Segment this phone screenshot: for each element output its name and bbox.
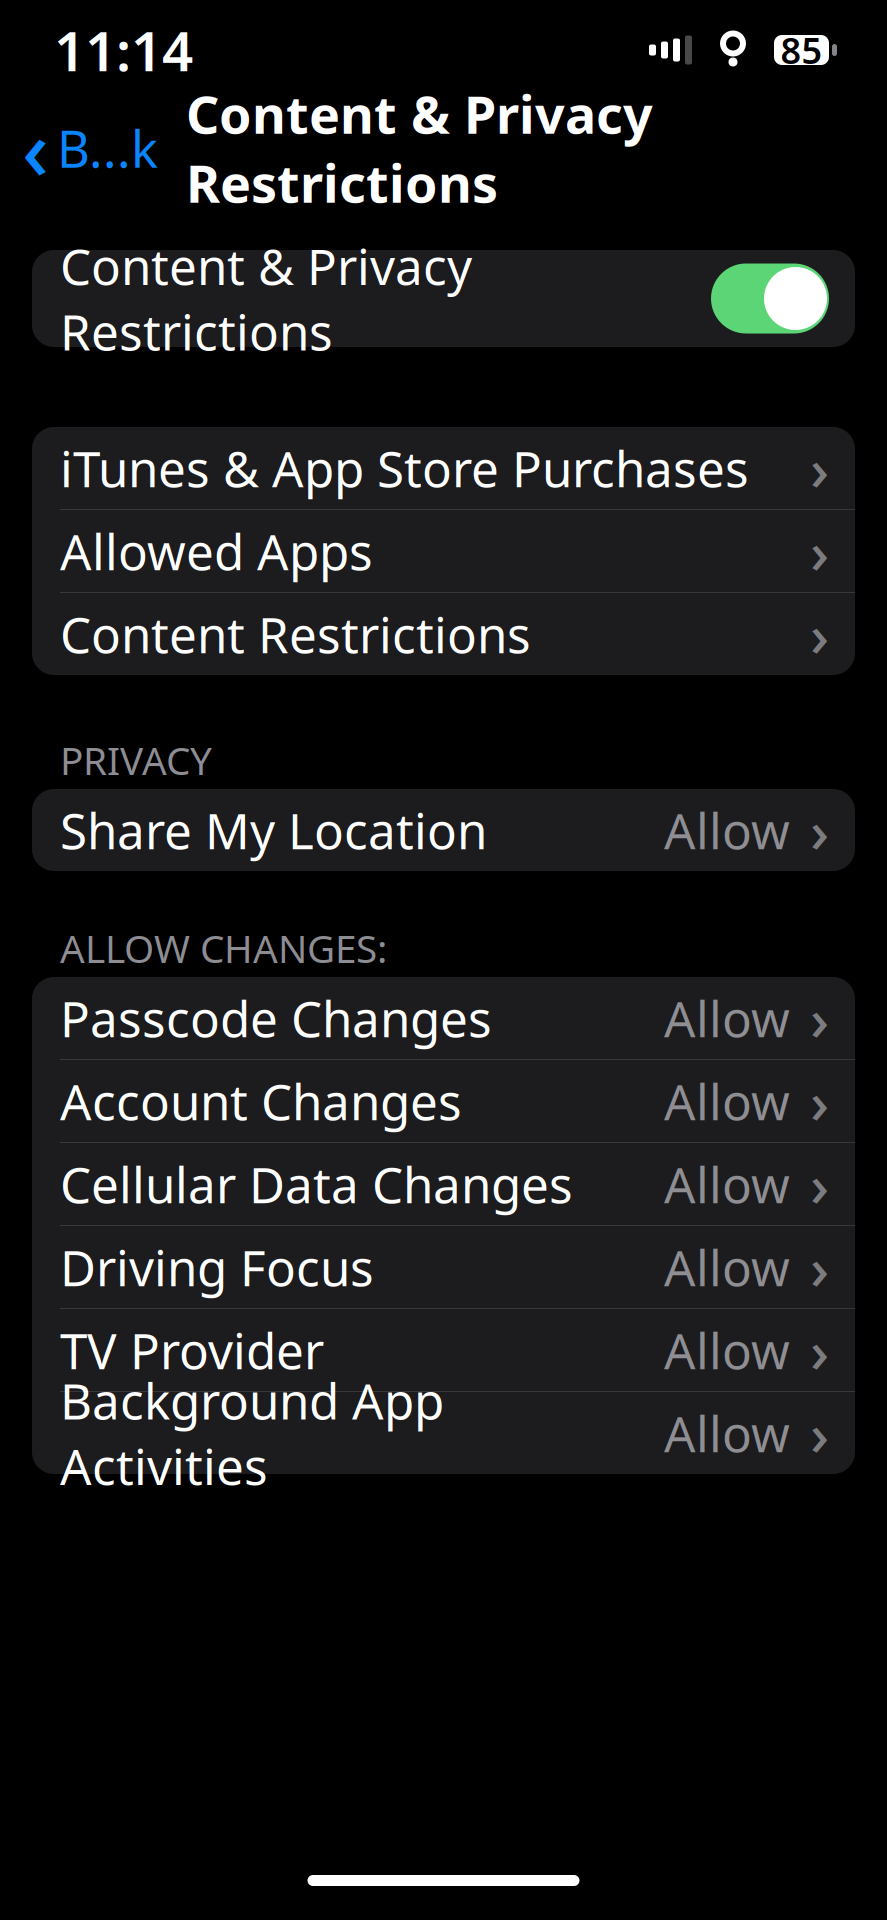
staticText: Account Changes: [60, 1068, 462, 1134]
staticText: Allow: [664, 1234, 790, 1300]
button[interactable]: Background App Activities: [32, 1392, 855, 1474]
button[interactable]: ‹: [0, 83, 166, 213]
staticText: ALLOW CHANGES:: [60, 922, 387, 974]
staticText: iTunes & App Store Purchases: [60, 435, 749, 501]
staticText: Driving Focus: [60, 1234, 374, 1300]
button[interactable]: iTunes & App Store Purchases: [32, 427, 855, 509]
button[interactable]: Cellular Data Changes: [32, 1143, 855, 1225]
staticText: ‹: [22, 93, 49, 203]
staticText: ›: [810, 595, 829, 673]
staticText: Allow: [664, 797, 790, 863]
staticText: PRIVACY: [60, 734, 212, 786]
staticText: ›: [810, 1062, 829, 1140]
staticText: Content Restrictions: [60, 601, 531, 667]
staticText: ›: [810, 512, 829, 590]
staticText: Allow: [664, 1317, 790, 1383]
staticText: ›: [810, 791, 829, 869]
staticText: ›: [810, 1228, 829, 1306]
staticText: TV Provider: [60, 1317, 324, 1383]
button[interactable]: Share My Location: [32, 789, 855, 871]
button[interactable]: Allowed Apps: [32, 510, 855, 592]
staticText: Passcode Changes: [60, 985, 492, 1051]
button[interactable]: TV Provider: [32, 1309, 855, 1391]
staticText: Cellular Data Changes: [60, 1151, 573, 1217]
staticText: ›: [810, 1311, 829, 1389]
staticText: B...k: [57, 114, 158, 182]
staticText: Content & Privacy Restrictions: [60, 233, 472, 364]
staticText: Allowed Apps: [60, 518, 373, 584]
staticText: 85: [780, 26, 822, 74]
staticText: ›: [810, 1394, 829, 1472]
button[interactable]: Content Restrictions: [32, 593, 855, 675]
staticText: Allow: [664, 1151, 790, 1217]
staticText: ›: [810, 429, 829, 507]
button[interactable]: Account Changes: [32, 1060, 855, 1142]
button[interactable]: Content & Privacy Restrictions: [32, 250, 855, 347]
staticText: Allow: [664, 985, 790, 1051]
staticText: ›: [810, 1145, 829, 1223]
staticText: Allow: [664, 1400, 790, 1466]
staticText: Allow: [664, 1068, 790, 1134]
staticText: 11:14: [54, 14, 193, 86]
staticText: Share My Location: [60, 797, 487, 863]
button[interactable]: Passcode Changes: [32, 977, 855, 1059]
button[interactable]: Driving Focus: [32, 1226, 855, 1308]
staticText: Background App Activities: [60, 1367, 444, 1498]
staticText: ›: [810, 979, 829, 1057]
staticText: Content & Privacy Restrictions: [186, 79, 653, 217]
